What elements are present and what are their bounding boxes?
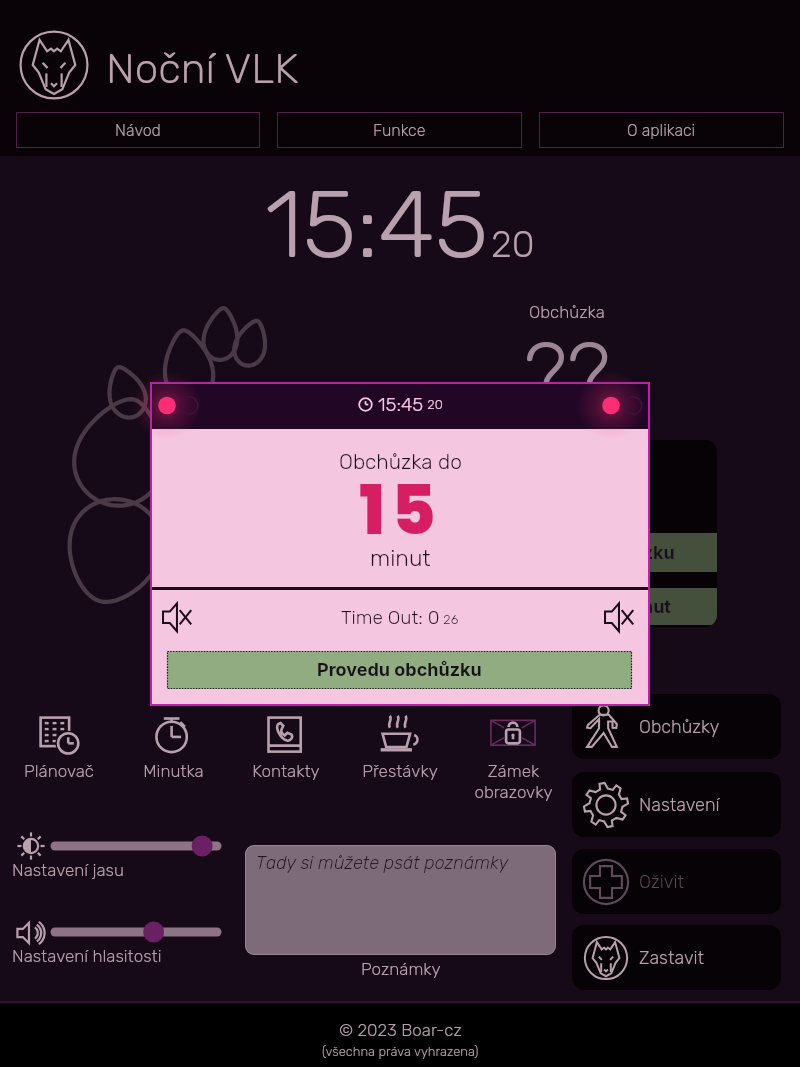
staticText: O aplikaci (627, 121, 696, 140)
staticText: Nastavení jasu (12, 860, 124, 880)
staticText: Provedu obchůzku (317, 659, 482, 681)
staticText: Návod (115, 121, 161, 140)
button[interactable]: Plánovač (2, 713, 116, 781)
staticText: Zámek obrazovky (474, 761, 553, 802)
button[interactable]: Oživit (572, 849, 781, 914)
button[interactable]: Provedu obchůzku (468, 533, 717, 572)
staticText: Obchůzky (639, 716, 720, 737)
button[interactable]: Zámek obrazovky (456, 713, 570, 802)
staticText: © 2023 Boar-cz (339, 1020, 462, 1040)
staticText: ?? (524, 324, 611, 426)
button[interactable]: O aplikaci (539, 112, 784, 148)
button[interactable]: Minutka (116, 713, 230, 781)
staticText: Poznámky (361, 959, 441, 979)
staticText: Minutka (143, 761, 204, 781)
button[interactable]: Ztlumit (604, 600, 638, 634)
staticText: 15 (359, 463, 442, 558)
staticText: Noční VLK (106, 44, 299, 94)
staticText: Nastavení hlasitosti (12, 946, 162, 966)
staticText: 20 (491, 222, 535, 266)
button[interactable] (52, 835, 220, 857)
button[interactable]: Tady si můžete psát poznámky (245, 845, 556, 955)
staticText: Přestávky (362, 761, 438, 781)
staticText: Nastavení (639, 794, 720, 815)
staticText: Oživit (639, 871, 684, 892)
staticText: 15:45 (378, 393, 424, 416)
staticText: Time Out: 0 (341, 606, 440, 629)
button[interactable]: Ztlumit (162, 600, 196, 634)
staticText: Kontakty (252, 761, 320, 781)
button[interactable]: Odložit o 15 minut (468, 588, 717, 625)
staticText: (všechna práva vyhrazena) (322, 1044, 479, 1059)
button[interactable]: Kontakty (229, 713, 343, 781)
staticText: Plánovač (24, 761, 94, 781)
button[interactable]: Provedu obchůzku (167, 651, 632, 689)
button[interactable]: Obchůzky (572, 694, 781, 759)
staticText: Provedu obchůzku (510, 542, 675, 564)
staticText: Odložit o 15 minut (515, 596, 671, 618)
staticText: Obchůzka do (339, 449, 462, 474)
staticText: 15:45 (265, 168, 488, 281)
staticText: 20 (424, 397, 443, 412)
staticText: minut (370, 544, 431, 571)
staticText: Funkce (373, 121, 426, 140)
button[interactable]: Zastavit (572, 925, 781, 990)
staticText: 26 (440, 612, 459, 627)
staticText: Zastavit (639, 947, 705, 968)
button[interactable] (52, 921, 220, 943)
button[interactable]: Funkce (277, 112, 522, 148)
button[interactable]: Návod (16, 112, 260, 148)
button[interactable]: Nastavení (572, 772, 781, 837)
button[interactable]: Přestávky (343, 713, 457, 781)
staticText: Tady si můžete psát poznámky (256, 852, 509, 873)
staticText: Obchůzka (529, 302, 605, 322)
